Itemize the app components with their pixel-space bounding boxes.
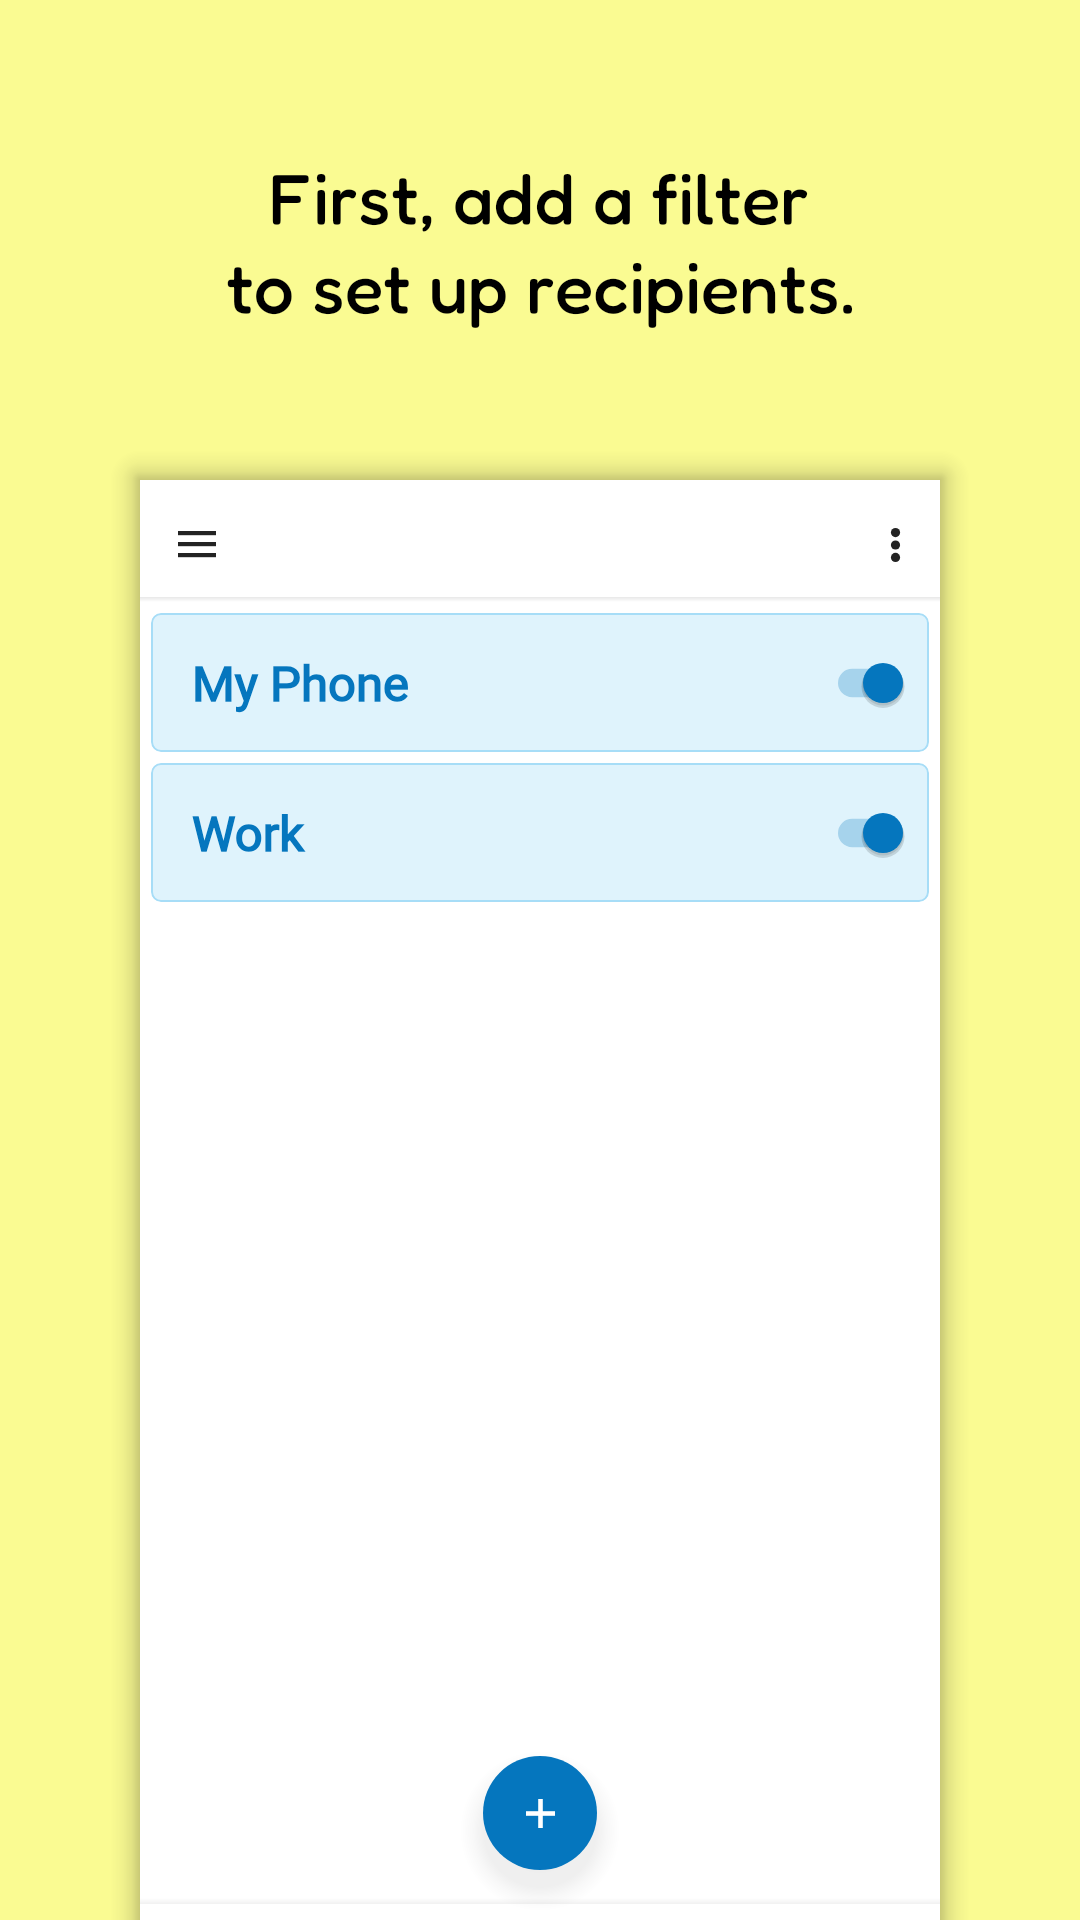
staticText: My Phone	[192, 656, 410, 713]
button[interactable]: Toggle filter	[838, 809, 920, 857]
button[interactable]: My Phone	[151, 613, 929, 752]
button[interactable]: Work	[151, 763, 929, 902]
button[interactable]: Toggle filter	[838, 659, 920, 707]
button[interactable]: Open navigation menu	[157, 504, 237, 584]
button[interactable]: Add filter	[483, 1756, 597, 1870]
staticText: Work	[192, 806, 305, 863]
button[interactable]: More options	[855, 505, 935, 585]
